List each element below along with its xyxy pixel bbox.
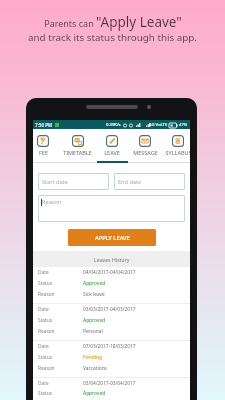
staticText: 03/04/2017-03/04/2017	[83, 380, 136, 387]
staticText: MESSAGE	[133, 149, 158, 156]
staticText: SYLLABUS	[165, 149, 190, 156]
staticText: Reason	[38, 328, 83, 335]
staticText: Approved	[83, 317, 106, 324]
staticText: APPLY LEAVE	[95, 234, 130, 242]
staticText: Status	[38, 280, 83, 287]
button[interactable]: APPLY LEAVE	[68, 229, 156, 246]
staticText: Approved	[83, 280, 106, 287]
button[interactable]: SYLLABUS	[161, 129, 190, 156]
staticText: Date	[38, 380, 83, 387]
staticText: Start date	[42, 178, 68, 186]
staticText: and track its status through this app.	[28, 31, 197, 44]
staticText: Leaves History	[94, 256, 130, 263]
button[interactable]: Date	[33, 304, 190, 340]
staticText: 0.39K/s	[106, 122, 121, 128]
button[interactable]: FEE	[33, 129, 60, 156]
button[interactable]: Start date	[38, 173, 109, 190]
staticText: 4G VoLTE	[149, 122, 168, 128]
staticText: 04/04/2017-04/04/2017	[83, 269, 136, 276]
staticText: 7:50 PM	[35, 122, 53, 128]
button[interactable]: Date	[33, 378, 190, 400]
staticText: 07/03/2017-18/03/2017	[83, 343, 136, 350]
staticText: Approved	[83, 390, 106, 397]
button[interactable]: Date	[33, 341, 190, 377]
staticText: Date	[38, 306, 83, 313]
button[interactable]: Reason	[38, 195, 185, 222]
staticText: 03/03/2017-04/03/2017	[83, 306, 136, 313]
staticText: Parents can "Apply Leave"	[44, 13, 182, 31]
staticText: LEAVE	[104, 149, 120, 156]
staticText: Personal	[83, 328, 103, 335]
staticText: Sick leave	[83, 291, 105, 298]
staticText: Date	[38, 343, 83, 350]
staticText: Status	[38, 317, 83, 324]
button[interactable]: LEAVE	[95, 129, 129, 156]
button[interactable]: MESSAGE	[129, 129, 161, 156]
staticText: Status	[38, 390, 83, 397]
staticText: Reason	[38, 365, 83, 372]
button[interactable]: Date	[33, 267, 190, 303]
staticText: Date	[38, 269, 83, 276]
button[interactable]: End date	[114, 173, 185, 190]
staticText: FEE	[39, 149, 48, 156]
button[interactable]: TIMETABLE	[60, 129, 95, 156]
staticText: Vaccations	[83, 365, 107, 372]
staticText: End date	[118, 178, 142, 186]
staticText: Reason	[42, 198, 62, 206]
staticText: TIMETABLE	[63, 149, 92, 156]
staticText: Pending	[83, 354, 102, 361]
staticText: 47%	[179, 122, 188, 128]
staticText: Status	[38, 354, 83, 361]
staticText: Reason	[38, 291, 83, 298]
